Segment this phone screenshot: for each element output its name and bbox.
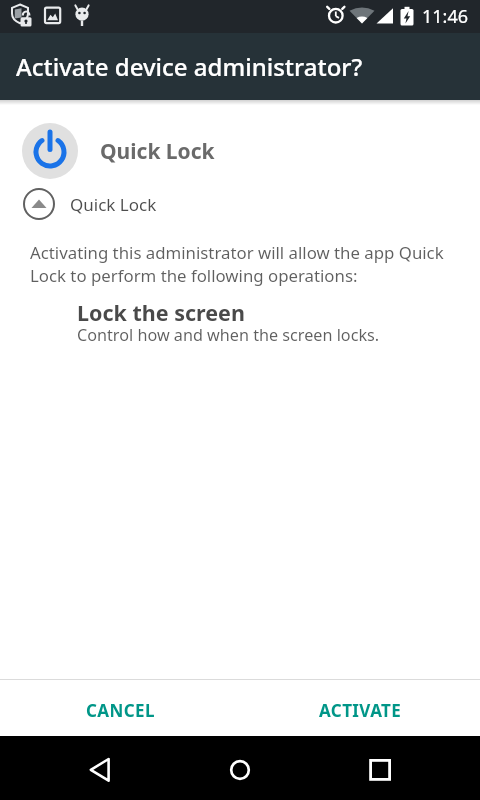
staticText: Control how and when the screen locks. <box>77 324 380 346</box>
staticText: Quick Lock <box>100 137 215 166</box>
staticText: CANCEL <box>86 699 155 722</box>
button[interactable] <box>320 736 480 800</box>
button[interactable]: CANCEL <box>0 684 240 736</box>
button[interactable]: ACTIVATE <box>240 684 480 736</box>
button[interactable] <box>0 736 160 800</box>
staticText: Quick Lock <box>70 193 157 216</box>
staticText: ACTIVATE <box>319 699 402 722</box>
button[interactable]: Quick Lock <box>23 188 157 220</box>
staticText: Activate device administrator? <box>16 50 363 83</box>
staticText: Lock to perform the following operations… <box>30 264 358 287</box>
staticText: 11:46 <box>422 4 469 29</box>
button[interactable] <box>160 736 320 800</box>
staticText: Lock the screen <box>77 298 245 327</box>
staticText: Activating this administrator will allow… <box>30 241 444 264</box>
